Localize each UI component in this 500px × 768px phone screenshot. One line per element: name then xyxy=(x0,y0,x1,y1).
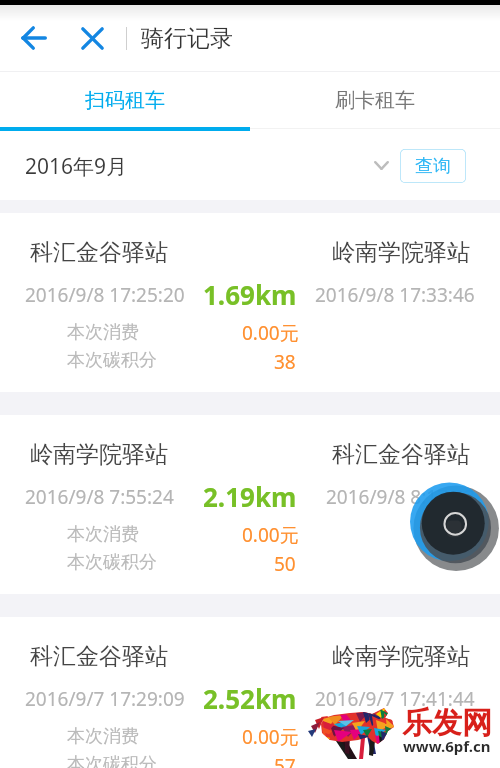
staticText: 本次消费 xyxy=(67,523,139,546)
staticText: 科汇金谷驿站 xyxy=(30,238,168,267)
staticText: 本次碳积分 xyxy=(67,349,157,372)
staticText: 2.19km xyxy=(203,479,297,514)
staticText: 查询 xyxy=(415,155,451,178)
staticText: 2016/9/8 7:55:24 xyxy=(25,484,174,510)
staticText: 38 xyxy=(274,349,296,375)
staticText: 2016年9月 xyxy=(25,152,128,181)
staticText: 0.00元 xyxy=(242,320,299,346)
staticText: 本次消费 xyxy=(67,725,139,748)
staticText: 岭南学院驿站 xyxy=(332,238,470,267)
staticText: 2016/9/8 17:33:46 xyxy=(315,282,475,308)
staticText: 科汇金谷驿站 xyxy=(30,642,168,671)
staticText: 1.69km xyxy=(203,277,297,312)
staticText: www.6pf.cn xyxy=(403,736,491,756)
staticText: 乐发网 xyxy=(402,704,492,742)
staticText: 扫码租车 xyxy=(85,88,165,113)
button[interactable]: 科汇金谷驿站 xyxy=(0,213,500,392)
staticText: 2016/9/8 17:25:20 xyxy=(25,282,185,308)
staticText: 岭南学院驿站 xyxy=(332,642,470,671)
staticText: 2016/9/7 17:29:09 xyxy=(25,686,185,712)
staticText: 57 xyxy=(274,753,296,768)
button[interactable]: Select month xyxy=(365,149,397,181)
button[interactable]: 科汇金谷驿站 xyxy=(0,617,500,768)
staticText: 2016/9/8 8:17:33 xyxy=(326,484,475,510)
button[interactable]: 刷卡租车 xyxy=(250,72,500,129)
staticText: 岭南学院驿站 xyxy=(30,440,168,469)
button[interactable]: Close xyxy=(68,5,116,71)
button[interactable]: 扫码租车 xyxy=(0,72,250,129)
button[interactable]: Assistive touch xyxy=(408,480,498,570)
button[interactable]: 查询 xyxy=(400,149,466,183)
staticText: 0.00元 xyxy=(242,724,299,750)
staticText: 0.00元 xyxy=(242,522,299,548)
staticText: 2016/9/7 17:41:44 xyxy=(315,686,475,712)
staticText: 骑行记录 xyxy=(141,24,233,53)
button[interactable]: Back xyxy=(10,5,58,71)
staticText: 本次消费 xyxy=(67,321,139,344)
staticText: 本次碳积分 xyxy=(67,551,157,574)
staticText: 刷卡租车 xyxy=(335,88,415,113)
staticText: 本次碳积分 xyxy=(67,753,157,768)
staticText: 科汇金谷驿站 xyxy=(332,440,470,469)
staticText: 50 xyxy=(274,551,296,577)
button[interactable]: 岭南学院驿站 xyxy=(0,415,500,594)
staticText: 2.52km xyxy=(203,681,297,716)
